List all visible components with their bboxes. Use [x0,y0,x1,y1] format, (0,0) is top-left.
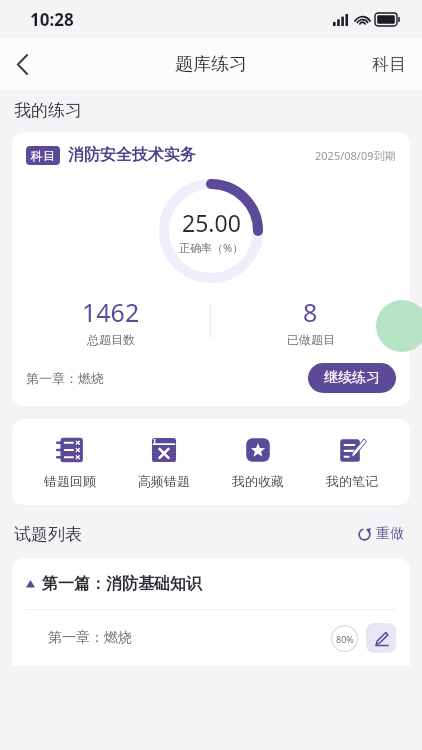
button[interactable]: Practice chapter [366,623,396,653]
button[interactable]: 我的笔记 [316,433,388,491]
staticText: 错题回顾 [44,473,96,489]
button[interactable]: 高频错题 [128,433,200,491]
button[interactable]: 错题回顾 [34,433,106,491]
staticText: 10:28 [30,8,74,31]
staticText: 第一章：燃烧 [48,629,132,647]
staticText: 1462 [82,295,140,329]
button[interactable]: 我的收藏 [222,433,294,491]
button[interactable]: 第一章：燃烧 [12,610,410,666]
button[interactable]: 科目 [12,132,410,406]
staticText: 消防安全技术实务 [68,145,196,165]
staticText: 高频错题 [138,473,190,489]
staticText: 已做题目 [287,332,335,347]
button[interactable]: 重做 [353,519,408,549]
staticText: 继续练习 [324,369,380,387]
staticText: 正确率（%） [179,240,244,255]
staticText: 试题列表 [14,524,82,545]
staticText: 重做 [376,525,404,543]
staticText: 80% [336,633,354,645]
staticText: 25.00 [182,207,241,238]
staticText: 科目 [372,54,406,75]
button[interactable]: 继续练习 [308,363,396,393]
staticText: 我的练习 [14,100,82,121]
staticText: 我的收藏 [232,473,284,489]
staticText: 第一章：燃烧 [26,370,104,386]
staticText: 8 [303,295,318,329]
staticText: 2025/08/09到期 [315,148,396,163]
button[interactable]: 第一篇：消防基础知识 [12,558,410,609]
staticText: 总题目数 [87,332,135,347]
staticText: 科目 [31,148,55,163]
staticText: 我的笔记 [326,473,378,489]
button[interactable]: Back [0,42,44,86]
button[interactable]: 科目 [364,46,414,83]
staticText: 第一篇：消防基础知识 [42,574,202,594]
staticText: 题库练习 [175,53,247,76]
